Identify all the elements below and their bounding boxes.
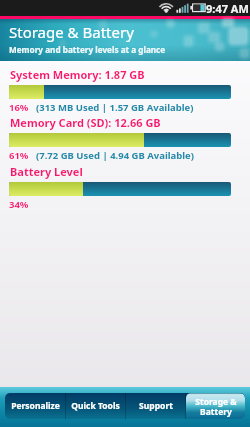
button[interactable]: Personalize bbox=[5, 393, 65, 419]
staticText: 9:47 AM bbox=[206, 1, 249, 16]
staticText: System Memory: 1.87 GB bbox=[10, 67, 145, 82]
staticText: 61% bbox=[9, 149, 29, 162]
staticText: Battery Level bbox=[10, 164, 83, 179]
button[interactable]: Support bbox=[126, 393, 185, 419]
staticText: Personalize bbox=[11, 400, 60, 412]
staticText: Storage & Battery bbox=[9, 22, 134, 42]
staticText: 16% bbox=[9, 101, 29, 114]
staticText: Support bbox=[139, 400, 173, 412]
staticText: Memory and battery levels at a glance bbox=[9, 44, 166, 55]
staticText: Memory Card (SD): 12.66 GB bbox=[10, 115, 161, 130]
staticText: 34% bbox=[9, 198, 29, 211]
staticText: (313 MB Used | 1.57 GB Available) bbox=[36, 101, 194, 114]
button[interactable]: Storage & Battery bbox=[186, 393, 245, 419]
staticText: Quick Tools bbox=[71, 400, 120, 412]
button[interactable]: Quick Tools bbox=[66, 393, 125, 419]
staticText: (7.72 GB Used | 4.94 GB Available) bbox=[36, 149, 195, 162]
staticText: Storage & Battery bbox=[195, 396, 237, 417]
